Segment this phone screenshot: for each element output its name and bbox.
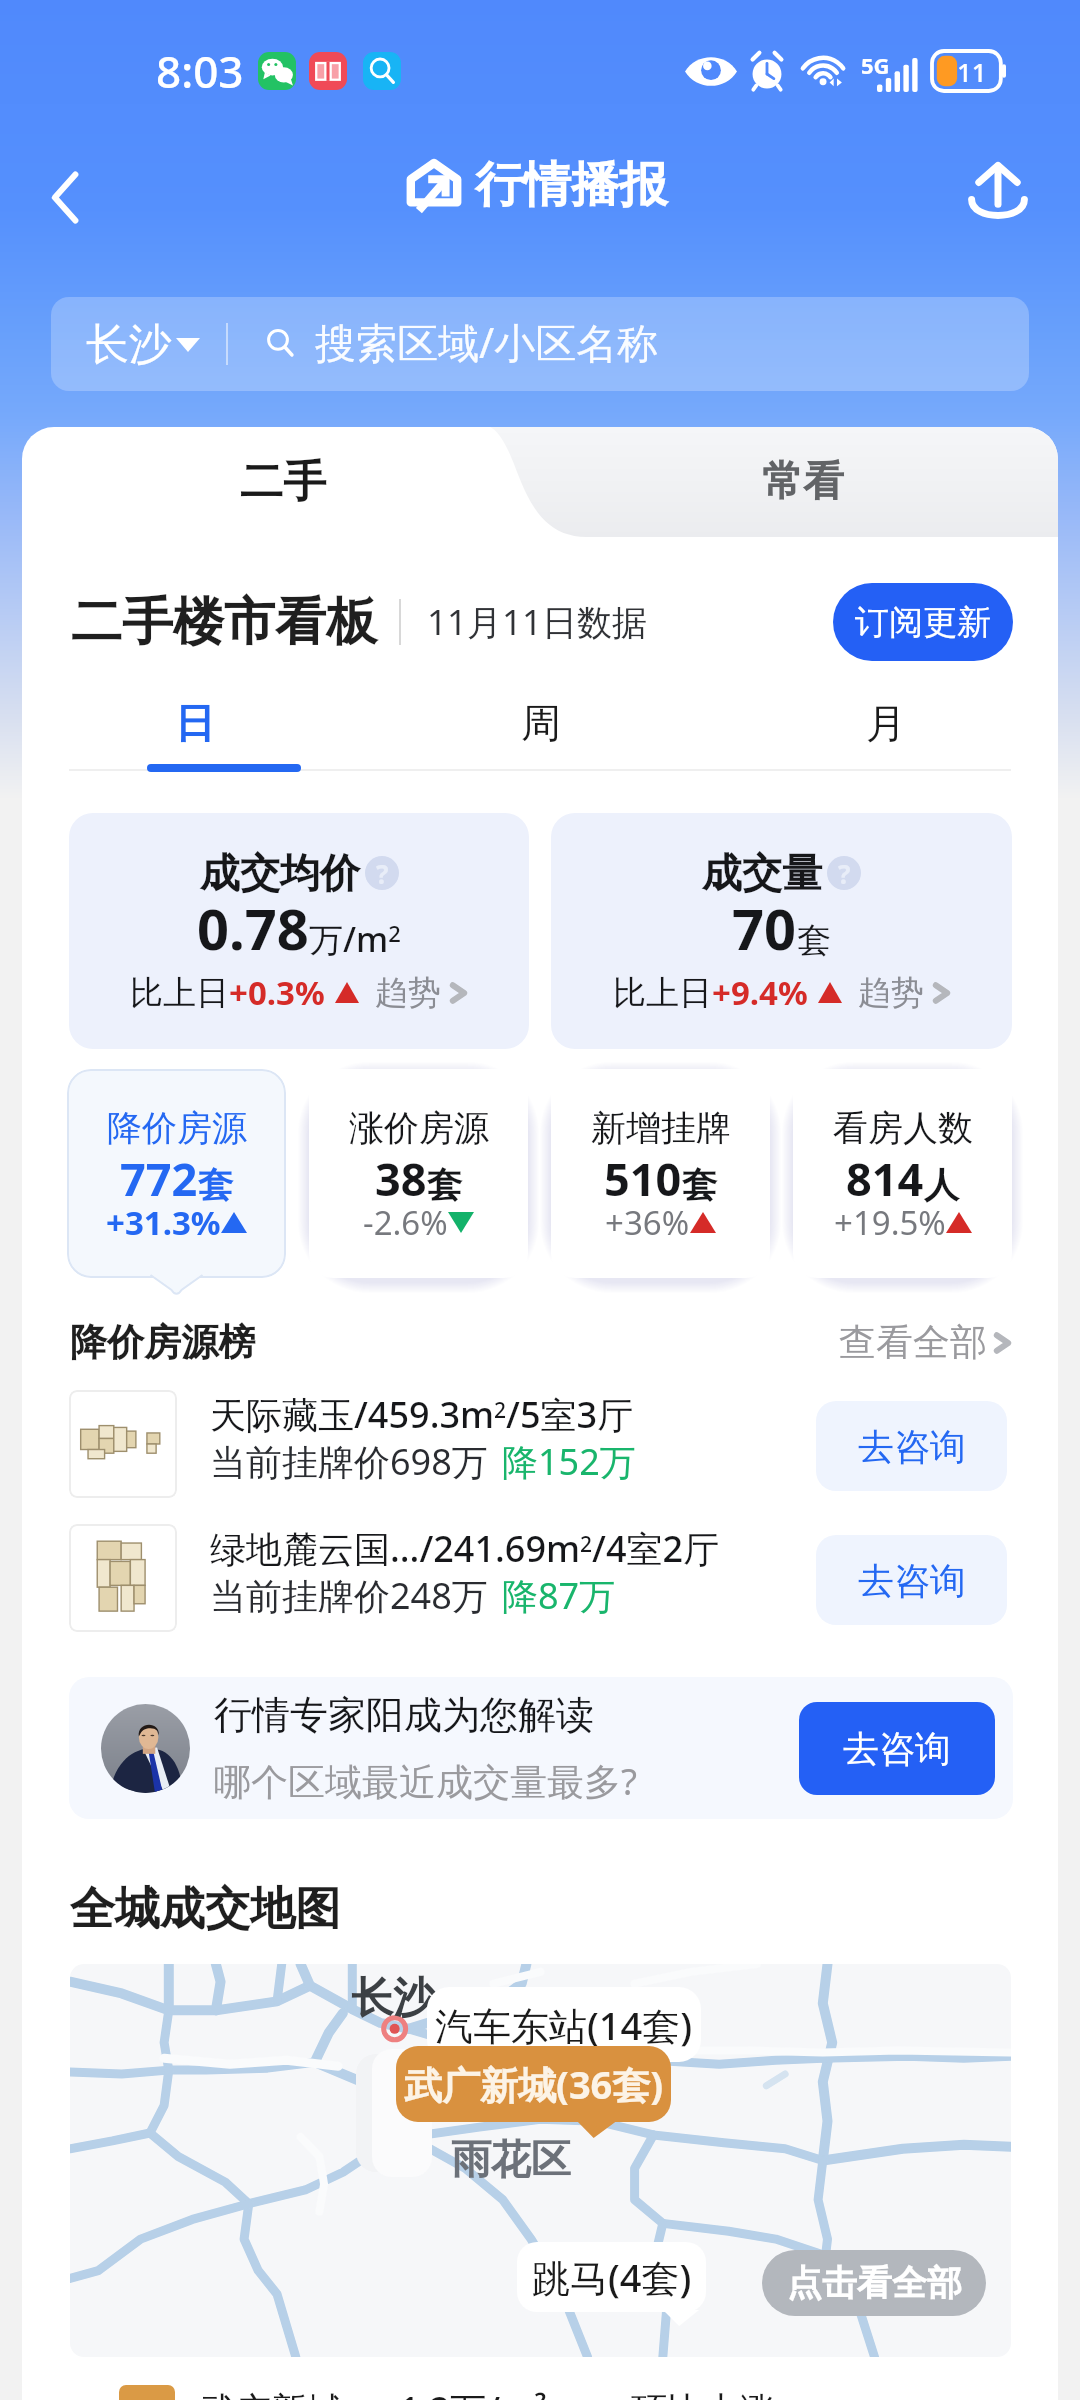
button[interactable]: 点击看全部 [762,2250,986,2316]
staticText: 套 [427,1163,462,1207]
staticText: 772 [120,1148,198,1209]
staticText: ? [376,856,389,890]
staticText: 814 [846,1148,924,1209]
staticText: 二手 [240,455,326,509]
staticText: 趋势 [375,972,441,1014]
staticText: 行情播报 [475,155,667,215]
button[interactable]: 成交量 [551,813,1012,1049]
staticText: 绿地麓云国.../241.69m2/4室2厅 [210,1524,720,1573]
staticText: 点击看全部 [787,2261,962,2305]
button[interactable]: 新增挂牌 [551,1069,770,1278]
staticText: 天际藏玉/459.3m2/5室3厅 [210,1390,634,1439]
staticText: +31.3% [106,1200,221,1245]
staticText: 降87万 [502,1571,616,1620]
button[interactable]: 常看 [708,427,898,537]
staticText: 套 [198,1163,233,1207]
staticText: 降价房源 [107,1106,247,1150]
staticText: 当前挂牌价248万 [210,1571,488,1620]
staticText: 510 [604,1148,682,1209]
staticText: 比上日 [130,972,229,1014]
staticText: 万/m2 [309,916,401,962]
button[interactable]: 去咨询 [816,1535,1007,1625]
staticText: 看房人数 [833,1106,973,1150]
staticText: 人 [924,1163,959,1207]
staticText: 月 [866,698,906,748]
staticText: +0.3% [229,970,325,1015]
staticText: 降价房源榜 [70,1319,255,1366]
staticText: 0.78 [197,890,309,966]
button[interactable]: 汽车东站(14套) [427,1987,701,2062]
staticText: +9.4% [712,970,808,1015]
staticText: 武广新城(36套) [404,2058,664,2110]
button[interactable]: 二手 [188,427,378,537]
staticText: 二手楼市看板 [71,590,377,654]
staticText: 长沙 [86,318,172,372]
staticText: 比上日 [613,972,712,1014]
button[interactable]: 涨价房源 [309,1069,528,1278]
staticText: 行情专家阳成为您解读 [214,1691,594,1739]
staticText: 11月11日数据 [427,598,648,646]
button[interactable]: 降价房源 [67,1069,286,1278]
button[interactable]: 天际藏玉/459.3m2/5室3厅 [22,1390,1058,1524]
staticText: 8:03 [156,41,244,101]
staticText: ? [838,856,851,890]
staticText: 查看全部 [839,1319,987,1366]
button[interactable]: 武广新城(36套) [396,2046,671,2122]
staticText: 38 [375,1148,427,1209]
button[interactable]: Back [22,148,108,234]
staticText: 成交量 [702,848,822,898]
staticText: 跳马(4套) [532,2251,692,2303]
staticText: 套 [682,1163,717,1207]
staticText: 日 [175,698,215,748]
button[interactable]: 绿地麓云国.../241.69m2/4室2厅 [22,1524,1058,1658]
staticText: 成交均价 [200,848,360,898]
staticText: 常看 [762,456,844,508]
staticText: 哪个区域最近成交量最多? [214,1755,638,1806]
staticText: +19.5% [834,1200,946,1245]
staticText: 降152万 [502,1437,636,1486]
button[interactable]: 成交均价 [69,813,529,1049]
staticText: 汽车东站(14套) [435,1999,693,2051]
button[interactable]: 去咨询 [799,1702,995,1795]
staticText: +36% [605,1200,690,1245]
staticText: 去咨询 [858,1424,966,1469]
button[interactable]: Share [955,145,1041,231]
button[interactable]: 长沙 [51,297,1029,391]
staticText: 去咨询 [858,1558,966,1603]
staticText: 武广新城 1.2万/m² 环比上涨 [199,2385,776,2400]
button[interactable]: 周 [368,667,713,773]
staticText: 涨价房源 [349,1106,489,1150]
button[interactable]: 查看全部 [839,1319,1012,1366]
button[interactable]: 看房人数 [793,1069,1012,1278]
staticText: 全城成交地图 [70,1881,340,1938]
staticText: 70 [732,890,797,966]
staticText: -2.6% [363,1200,448,1245]
staticText: 11 [957,54,987,89]
button[interactable]: 月 [713,667,1058,773]
staticText: 订阅更新 [855,601,991,644]
staticText: 新增挂牌 [591,1106,731,1150]
button[interactable]: 去咨询 [816,1401,1007,1491]
staticText: 周 [521,698,561,748]
button[interactable]: 跳马(4套) [517,2242,706,2312]
staticText: 套 [797,919,831,962]
staticText: 雨花区 [451,2134,571,2184]
staticText: 去咨询 [843,1726,951,1771]
staticText: 长沙 [351,1972,435,2025]
staticText: 当前挂牌价698万 [210,1437,488,1486]
staticText: 搜索区域/小区名称 [315,314,659,370]
button[interactable]: 日 [22,667,368,773]
button[interactable]: 订阅更新 [833,583,1013,661]
staticText: 5G [861,50,890,80]
staticText: 趋势 [858,972,924,1014]
